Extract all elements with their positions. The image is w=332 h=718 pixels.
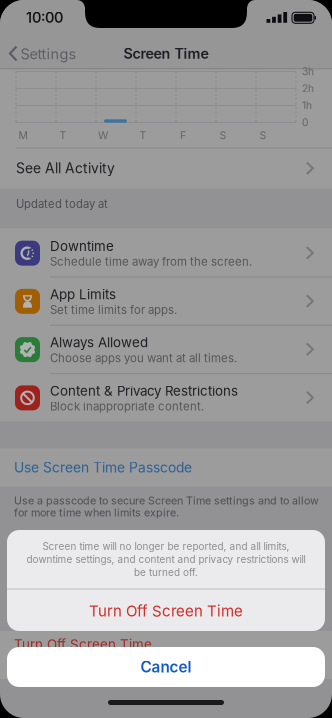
- staticText: F: [180, 129, 186, 142]
- staticText: S: [259, 129, 266, 142]
- staticText: Turn Off Screen Time: [89, 602, 243, 620]
- button[interactable]: See All Activity: [0, 148, 332, 188]
- staticText: Use Screen Time Passcode: [14, 459, 192, 476]
- button[interactable]: Use Screen Time Passcode: [0, 448, 332, 486]
- button[interactable]: Content & Privacy Restrictions: [0, 373, 332, 422]
- staticText: Block inappropriate content.: [50, 399, 204, 413]
- staticText: Updated today at: [16, 197, 108, 211]
- staticText: M: [18, 129, 27, 142]
- staticText: Cancel: [140, 658, 191, 676]
- button[interactable]: Cancel: [7, 647, 325, 687]
- staticText: 10:00: [26, 9, 63, 26]
- staticText: Screen Time: [123, 45, 208, 62]
- staticText: S: [219, 129, 226, 142]
- staticText: Screen time will no longer be reported, …: [42, 540, 289, 552]
- staticText: Settings: [20, 45, 76, 63]
- staticText: be turned off.: [134, 566, 198, 578]
- staticText: Always Allowed: [50, 334, 148, 351]
- button[interactable]: Back: [0, 36, 95, 70]
- staticText: 2h: [302, 82, 314, 95]
- staticText: Use a passcode to secure Screen Time set…: [14, 494, 319, 507]
- button[interactable]: Turn Off Screen Time: [0, 636, 332, 652]
- staticText: Downtime: [50, 238, 114, 254]
- staticText: W: [98, 129, 108, 142]
- staticText: See All Activity: [16, 160, 115, 177]
- staticText: Content & Privacy Restrictions: [50, 383, 238, 399]
- staticText: Turn Off Screen Time: [14, 636, 152, 653]
- button[interactable]: Turn Off Screen Time: [7, 590, 325, 632]
- staticText: Schedule time away from the screen.: [50, 255, 252, 269]
- button[interactable]: Downtime: [0, 229, 332, 277]
- staticText: downtime settings, and content and priva…: [26, 553, 305, 565]
- staticText: for more time when limits expire.: [14, 506, 179, 519]
- staticText: 0: [302, 116, 308, 129]
- button[interactable]: Always Allowed: [0, 325, 332, 373]
- staticText: App Limits: [50, 286, 116, 302]
- staticText: 3h: [302, 65, 314, 78]
- staticText: Choose apps you want at all times.: [50, 351, 237, 365]
- staticText: 1h: [302, 99, 312, 112]
- staticText: Set time limits for apps.: [50, 303, 177, 317]
- button[interactable]: App Limits: [0, 277, 332, 325]
- staticText: T: [139, 129, 146, 142]
- staticText: T: [59, 129, 66, 142]
